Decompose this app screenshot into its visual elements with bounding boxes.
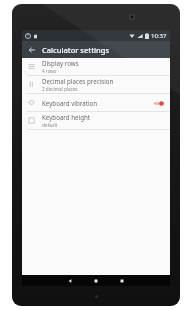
staticText: Keyboard height: [42, 113, 90, 121]
staticText: Display rows: [42, 59, 79, 67]
staticText: Calculator settings: [42, 45, 110, 55]
staticText: 4 rows: [42, 68, 57, 74]
staticText: 2 decimal places: [42, 86, 78, 92]
button[interactable]: Keyboard vibration toggle: [151, 97, 165, 109]
button[interactable]: Decimal places precision: [22, 76, 170, 93]
staticText: Decimal places precision: [42, 77, 114, 85]
staticText: 10:37: [151, 32, 167, 40]
button[interactable]: Navigate up: [22, 41, 42, 58]
button[interactable]: Keyboard height: [22, 112, 170, 129]
staticText: Keyboard vibration: [42, 99, 98, 107]
button[interactable]: Keyboard vibration: [22, 94, 170, 111]
staticText: default: [42, 122, 58, 128]
button[interactable]: Back: [57, 275, 83, 286]
button[interactable]: Display rows: [22, 58, 170, 75]
button[interactable]: Home: [83, 275, 109, 286]
button[interactable]: Recent apps: [109, 275, 135, 286]
